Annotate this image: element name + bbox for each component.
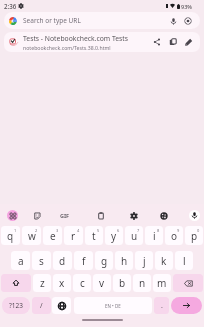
button[interactable]: ?123: [2, 297, 30, 314]
button[interactable]: f: [74, 251, 93, 270]
staticText: /: [40, 301, 43, 311]
staticText: l: [183, 254, 186, 268]
button[interactable]: i: [145, 226, 163, 245]
staticText: c: [80, 276, 85, 290]
button[interactable]: l: [175, 251, 193, 270]
button[interactable]: d: [53, 251, 72, 270]
staticText: .: [161, 301, 163, 311]
button[interactable]: Gboard: [7, 210, 18, 221]
staticText: 5: [97, 228, 100, 233]
button[interactable]: r: [64, 226, 83, 245]
staticText: a: [18, 254, 24, 268]
button[interactable]: .: [154, 297, 169, 314]
button[interactable]: Voice search: [168, 16, 178, 26]
button[interactable]: Copy: [165, 34, 181, 50]
button[interactable]: g: [95, 251, 113, 270]
button[interactable]: n: [133, 274, 151, 292]
button[interactable]: GIF: [59, 204, 71, 226]
button[interactable]: EN • DE: [74, 297, 152, 314]
staticText: ?123: [9, 301, 23, 310]
staticText: EN • DE: [105, 303, 121, 309]
button[interactable]: v: [93, 274, 111, 292]
staticText: GIF: [60, 212, 70, 219]
staticText: x: [59, 276, 65, 290]
staticText: Tests - Notebookcheck.com Tests: [23, 34, 129, 43]
staticText: q: [7, 229, 14, 243]
staticText: y: [111, 229, 117, 243]
button[interactable]: Tests - Notebookcheck.com Tests: [4, 32, 200, 52]
staticText: n: [139, 276, 146, 290]
button[interactable]: o: [165, 226, 183, 245]
button[interactable]: k: [155, 251, 173, 270]
button[interactable]: Voice input: [189, 210, 200, 221]
staticText: h: [121, 254, 128, 268]
button[interactable]: Change language: [52, 297, 71, 314]
button[interactable]: x: [53, 274, 71, 292]
button[interactable]: b: [113, 274, 131, 292]
staticText: s: [39, 254, 44, 268]
staticText: 1: [14, 228, 17, 233]
staticText: w: [28, 229, 36, 243]
staticText: 7: [137, 228, 140, 233]
staticText: k: [161, 254, 167, 268]
staticText: g: [101, 254, 108, 268]
staticText: e: [50, 229, 56, 243]
staticText: 2:36: [4, 2, 17, 10]
staticText: d: [59, 254, 66, 268]
button[interactable]: e: [43, 226, 62, 245]
button[interactable]: Stickers: [31, 210, 42, 221]
staticText: j: [143, 254, 146, 268]
staticText: Search or type URL: [23, 16, 81, 25]
staticText: 3: [56, 228, 59, 233]
button[interactable]: Google Lens: [183, 16, 193, 26]
staticText: r: [71, 229, 76, 243]
button[interactable]: Enter: [171, 297, 202, 314]
staticText: t: [92, 229, 96, 243]
staticText: 8: [157, 228, 160, 233]
staticText: 9: [177, 228, 180, 233]
button[interactable]: Settings: [128, 210, 139, 221]
staticText: f: [82, 254, 86, 268]
staticText: o: [171, 229, 178, 243]
staticText: b: [119, 276, 126, 290]
staticText: i: [153, 229, 156, 243]
button[interactable]: Backspace: [173, 274, 203, 292]
staticText: notebookcheck.com/Tests.38.0.html: [23, 44, 111, 51]
button[interactable]: /: [32, 297, 51, 314]
staticText: z: [40, 276, 45, 290]
button[interactable]: Edit: [181, 34, 197, 50]
staticText: u: [131, 229, 138, 243]
staticText: 4: [77, 228, 80, 233]
staticText: p: [191, 229, 198, 243]
staticText: 93%: [181, 3, 192, 10]
button[interactable]: u: [125, 226, 143, 245]
button[interactable]: y: [105, 226, 123, 245]
staticText: 6: [117, 228, 120, 233]
button[interactable]: m: [153, 274, 171, 292]
button[interactable]: q: [1, 226, 20, 245]
button[interactable]: Shift: [1, 274, 31, 292]
button[interactable]: w: [22, 226, 41, 245]
button[interactable]: z: [33, 274, 51, 292]
button[interactable]: c: [73, 274, 91, 292]
staticText: 2: [35, 228, 38, 233]
button[interactable]: Themes: [158, 210, 169, 221]
button[interactable]: s: [32, 251, 51, 270]
button[interactable]: j: [135, 251, 153, 270]
button[interactable]: Share: [149, 34, 165, 50]
button[interactable]: Clipboard: [95, 210, 106, 221]
staticText: m: [157, 276, 167, 290]
staticText: v: [99, 276, 105, 290]
button[interactable]: h: [115, 251, 133, 270]
button[interactable]: p: [185, 226, 203, 245]
button[interactable]: Search or type URL: [4, 12, 200, 29]
staticText: 0: [197, 228, 200, 233]
button[interactable]: t: [85, 226, 103, 245]
button[interactable]: a: [11, 251, 30, 270]
